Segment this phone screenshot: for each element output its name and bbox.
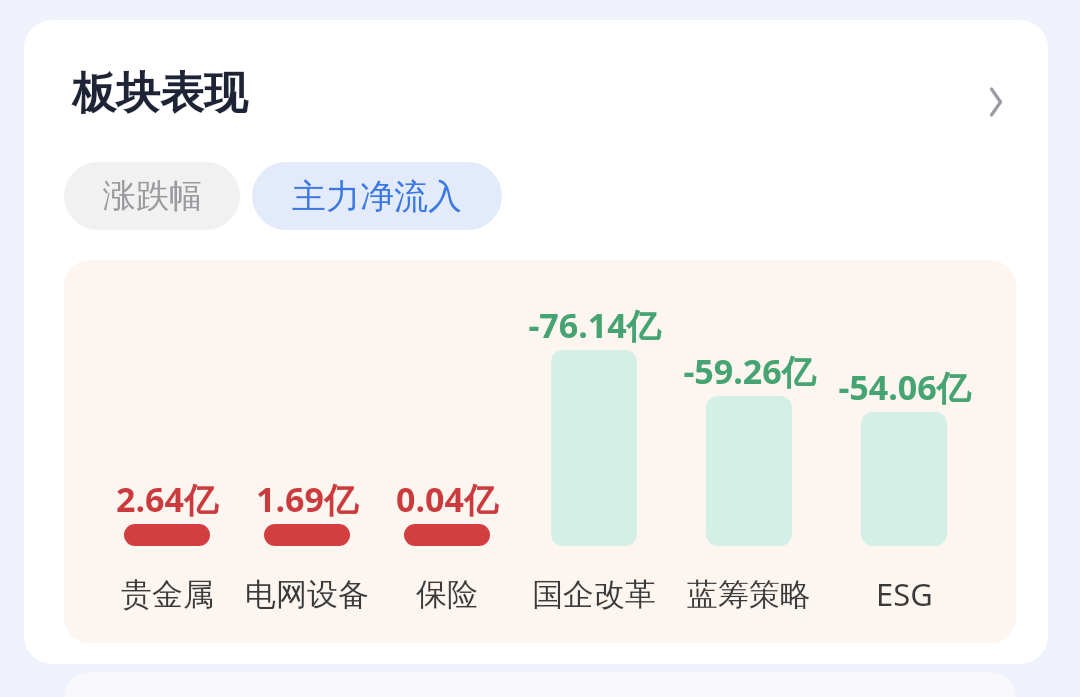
button[interactable]: 贵金属 (57, 572, 277, 616)
button[interactable] (24, 20, 1048, 664)
staticText: -59.26亿 (683, 348, 816, 394)
button[interactable]: 蓝筹策略 (639, 572, 859, 616)
staticText: 贵金属 (121, 575, 214, 614)
button[interactable]: 查看更多板块表现 (960, 62, 1032, 142)
staticText: 2.64亿 (116, 476, 218, 522)
staticText: 1.69亿 (256, 476, 358, 522)
staticText: 0.04亿 (396, 476, 498, 522)
staticText: 电网设备 (245, 575, 369, 614)
staticText: 蓝筹策略 (687, 575, 811, 614)
staticText: ESG (876, 573, 933, 615)
staticText: 保险 (416, 575, 478, 614)
staticText: 主力净流入 (292, 175, 462, 218)
button[interactable]: 涨跌幅 (64, 162, 240, 230)
staticText: -76.14亿 (528, 302, 661, 348)
staticText: 涨跌幅 (103, 175, 202, 217)
button[interactable]: ESG (794, 572, 1014, 616)
button[interactable]: 保险 (337, 572, 557, 616)
button[interactable]: 电网设备 (197, 572, 417, 616)
staticText: -54.06亿 (838, 364, 971, 410)
button[interactable]: 主力净流入 (252, 162, 502, 230)
staticText: 板块表现 (72, 66, 248, 121)
staticText: 国企改革 (532, 575, 656, 614)
button[interactable]: 国企改革 (484, 572, 704, 616)
